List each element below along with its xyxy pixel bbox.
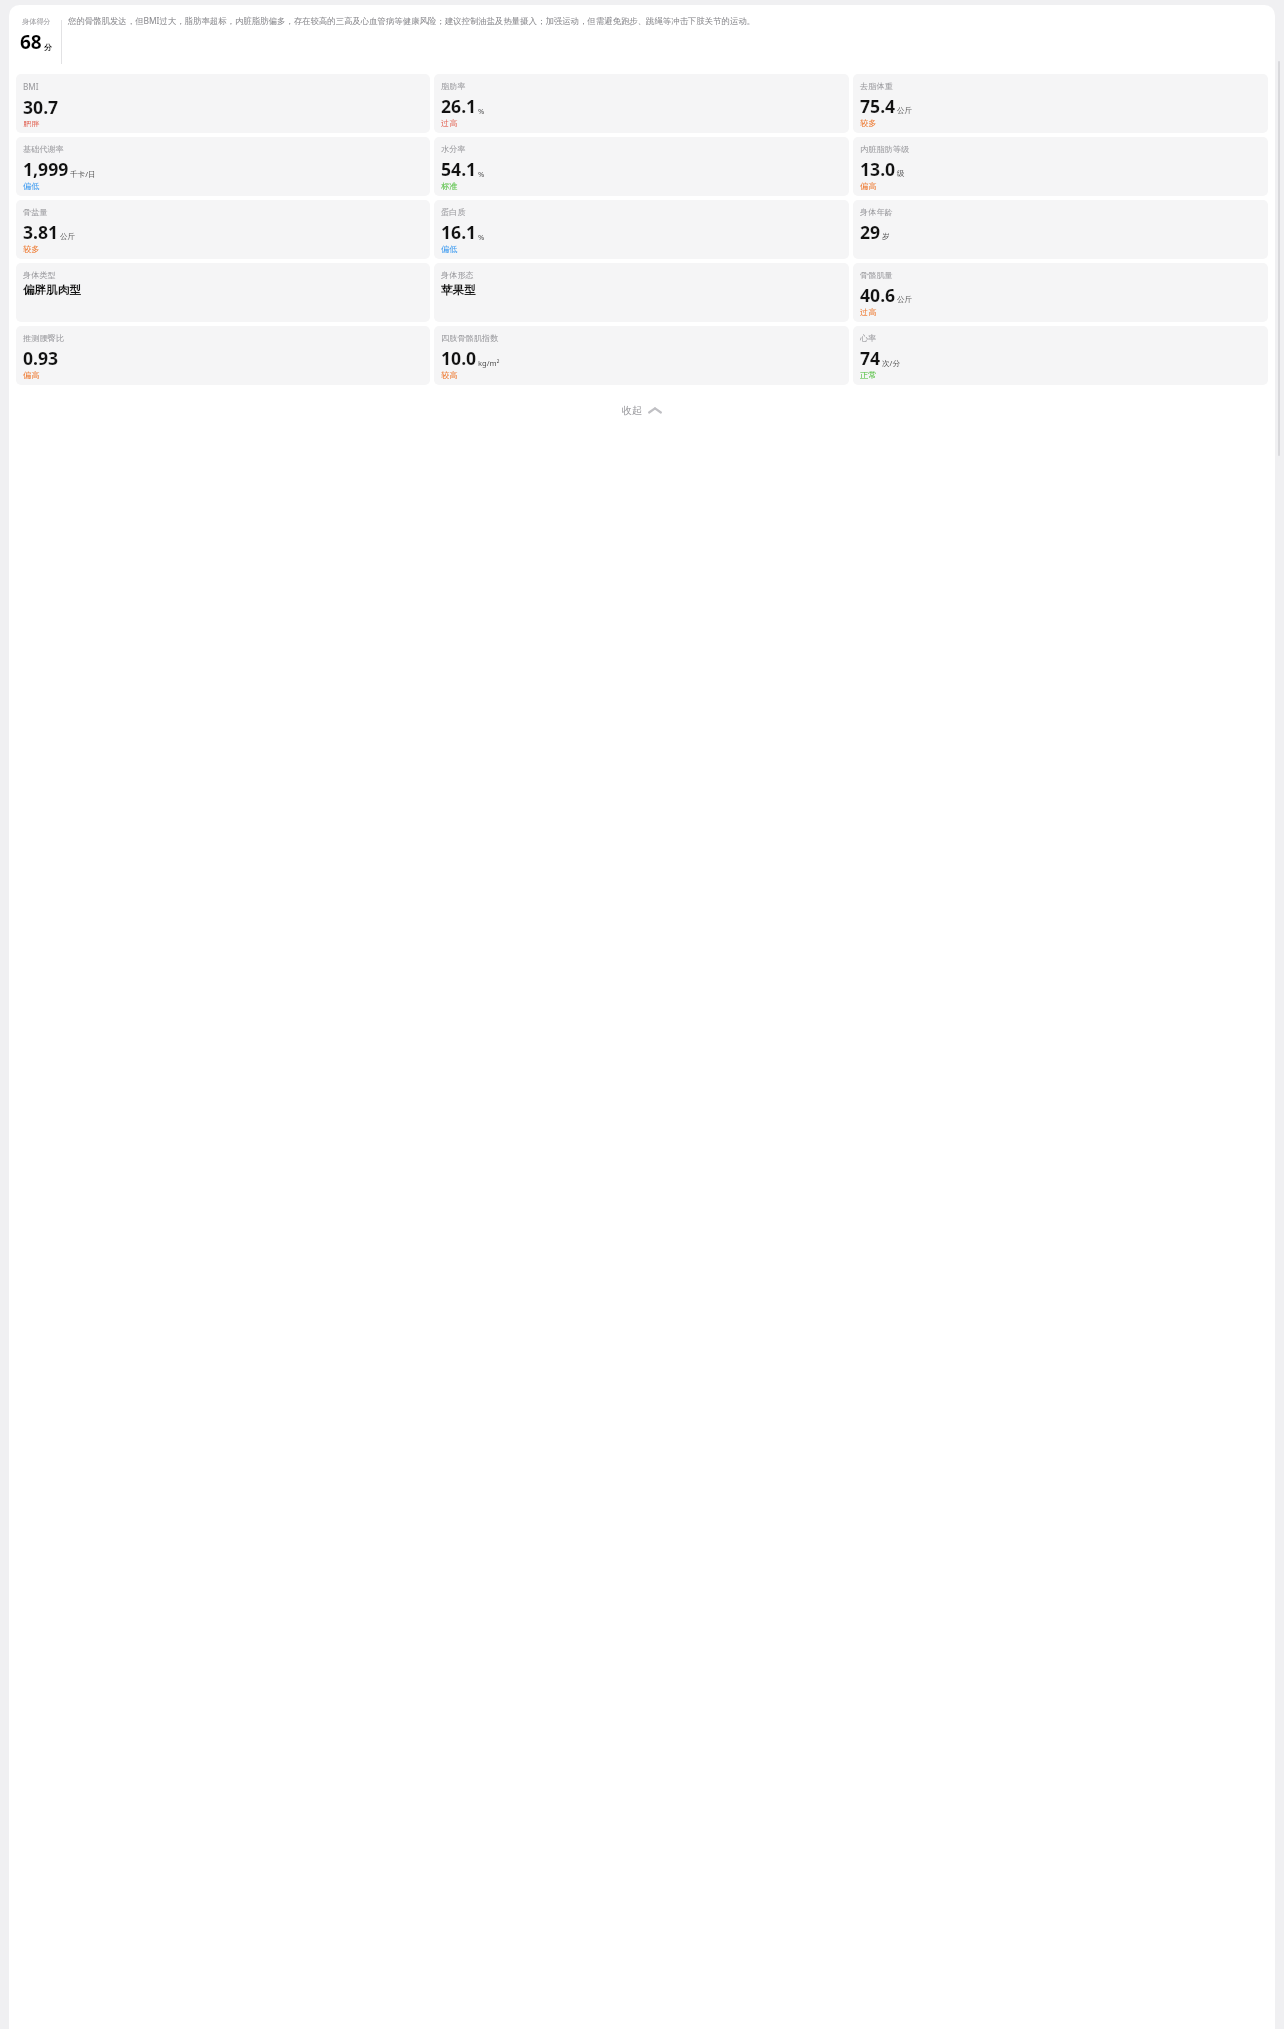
- staticText: 水分率: [441, 144, 466, 154]
- staticText: 3.81: [23, 220, 59, 244]
- staticText: 过高: [441, 118, 458, 127]
- staticText: 肥胖: [23, 119, 40, 127]
- staticText: 10.0: [441, 346, 477, 370]
- staticText: 13.0: [860, 157, 896, 181]
- staticText: 千卡/日: [70, 169, 96, 179]
- button[interactable]: 水分率: [434, 137, 849, 196]
- button[interactable]: 身体形态: [434, 263, 849, 322]
- button[interactable]: 骨骼肌量: [853, 263, 1268, 322]
- staticText: 较多: [23, 244, 40, 253]
- staticText: 公斤: [60, 232, 76, 242]
- staticText: 40.6: [860, 283, 896, 307]
- staticText: 0.93: [23, 346, 59, 370]
- staticText: 16.1: [441, 220, 477, 244]
- staticText: 公斤: [897, 106, 913, 116]
- staticText: %: [478, 169, 485, 179]
- staticText: 偏低: [441, 244, 458, 253]
- staticText: 脂肪率: [441, 81, 466, 91]
- staticText: 四肢骨骼肌指数: [441, 333, 499, 343]
- staticText: %: [478, 232, 485, 242]
- staticText: 26.1: [441, 94, 477, 118]
- button[interactable]: 内脏脂肪等级: [853, 137, 1268, 196]
- staticText: 推测腰臀比: [23, 333, 64, 343]
- staticText: 偏高: [860, 181, 877, 190]
- staticText: 您的骨骼肌发达，但BMI过大，脂肪率超标，内脏脂肪偏多，存在较高的三高及心血管病…: [68, 15, 756, 26]
- button[interactable]: 去脂体重: [853, 74, 1268, 133]
- staticText: 岁: [882, 232, 890, 242]
- staticText: 偏胖肌肉型: [23, 283, 81, 298]
- button[interactable]: 四肢骨骼肌指数: [434, 326, 849, 385]
- staticText: 偏高: [23, 370, 40, 379]
- staticText: 54.1: [441, 157, 477, 181]
- staticText: 30.7: [23, 95, 59, 119]
- staticText: 74: [860, 346, 881, 370]
- staticText: 去脂体重: [860, 81, 893, 91]
- staticText: 偏低: [23, 181, 40, 190]
- staticText: 75.4: [860, 94, 896, 118]
- staticText: 骨骼肌量: [860, 270, 893, 280]
- button[interactable]: 身体年龄: [853, 200, 1268, 259]
- staticText: 1,999: [23, 157, 69, 181]
- staticText: 29: [860, 220, 881, 244]
- staticText: 身体得分: [22, 17, 51, 26]
- button[interactable]: 基础代谢率: [16, 137, 430, 196]
- staticText: 68: [20, 29, 42, 55]
- staticText: kg/m²: [478, 358, 500, 368]
- staticText: 过高: [860, 307, 877, 316]
- staticText: 蛋白质: [441, 207, 466, 217]
- staticText: 较高: [441, 370, 458, 379]
- staticText: 心率: [860, 333, 877, 343]
- button[interactable]: 骨盐量: [16, 200, 430, 259]
- staticText: 身体形态: [441, 270, 474, 280]
- staticText: 级: [897, 169, 905, 179]
- staticText: 基础代谢率: [23, 144, 64, 154]
- button[interactable]: 身体类型: [16, 263, 430, 322]
- button[interactable]: 收起: [9, 397, 1275, 424]
- staticText: 内脏脂肪等级: [860, 144, 910, 154]
- staticText: 身体类型: [23, 270, 56, 280]
- other: Collapse: [648, 406, 662, 415]
- button[interactable]: 脂肪率: [434, 74, 849, 133]
- staticText: 分: [44, 42, 52, 52]
- staticText: 标准: [441, 181, 458, 190]
- staticText: 骨盐量: [23, 207, 48, 217]
- staticText: 身体年龄: [860, 207, 893, 217]
- button[interactable]: 推测腰臀比: [16, 326, 430, 385]
- staticText: 收起: [622, 404, 642, 417]
- staticText: 苹果型: [441, 283, 476, 298]
- button[interactable]: 蛋白质: [434, 200, 849, 259]
- staticText: 公斤: [897, 295, 913, 305]
- staticText: 正常: [860, 370, 877, 379]
- staticText: %: [478, 106, 485, 116]
- staticText: 次/分: [882, 358, 901, 368]
- staticText: 较多: [860, 118, 877, 127]
- button[interactable]: BMI: [16, 74, 430, 133]
- staticText: BMI: [23, 81, 39, 92]
- button[interactable]: 心率: [853, 326, 1268, 385]
